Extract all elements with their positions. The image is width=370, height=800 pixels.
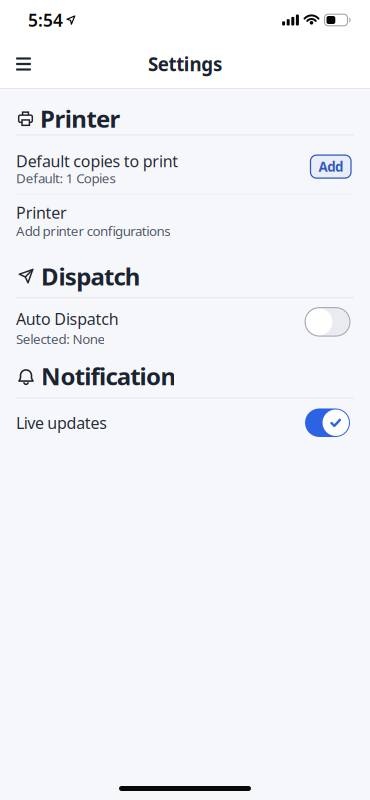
staticText: Add bbox=[318, 158, 343, 175]
button[interactable]: Menu bbox=[0, 57, 31, 71]
button[interactable]: Add bbox=[310, 155, 351, 178]
staticText: Printer bbox=[16, 202, 67, 223]
staticText: 5:54 bbox=[28, 8, 63, 31]
button[interactable]: Live updates bbox=[305, 408, 350, 437]
button[interactable]: Auto Dispatch bbox=[305, 308, 350, 336]
staticText: Default: 1 Copies bbox=[16, 169, 115, 187]
staticText: Default copies to print bbox=[16, 150, 178, 172]
staticText: Settings bbox=[148, 52, 222, 76]
staticText: Auto Dispatch bbox=[16, 308, 119, 329]
staticText: Add printer configurations bbox=[16, 222, 170, 240]
button[interactable]: Printer bbox=[0, 195, 170, 240]
staticText: Dispatch bbox=[41, 260, 141, 292]
staticText: Printer bbox=[40, 102, 120, 134]
staticText: Live updates bbox=[16, 412, 107, 433]
staticText: Notification bbox=[41, 360, 176, 392]
staticText: Selected: None bbox=[16, 330, 105, 348]
